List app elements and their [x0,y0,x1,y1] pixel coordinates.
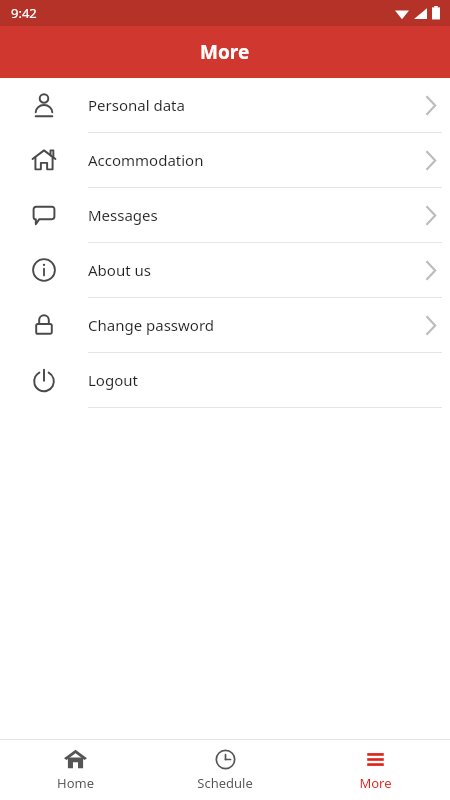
staticText: Change password [88,315,412,335]
staticText: More [359,774,392,792]
staticText: Home [57,774,94,792]
button[interactable]: Change password [0,298,450,353]
staticText: More [200,39,250,65]
button[interactable]: Logout [0,353,450,408]
button[interactable]: More [300,741,450,799]
staticText: Messages [88,205,412,225]
staticText: Logout [88,370,412,390]
other: Schedule [214,748,237,771]
staticText: 9:42 [11,4,37,22]
button[interactable]: Home [0,741,150,799]
staticText: Schedule [197,774,253,792]
button[interactable]: Accommodation [0,133,450,188]
staticText: About us [88,260,412,280]
staticText: Personal data [88,95,412,115]
button[interactable]: Messages [0,188,450,243]
button[interactable]: About us [0,243,450,298]
other: More [364,748,387,771]
button[interactable]: Personal data [0,78,450,133]
button[interactable]: Schedule [150,741,300,799]
staticText: Accommodation [88,150,412,170]
other: Home [64,748,87,771]
